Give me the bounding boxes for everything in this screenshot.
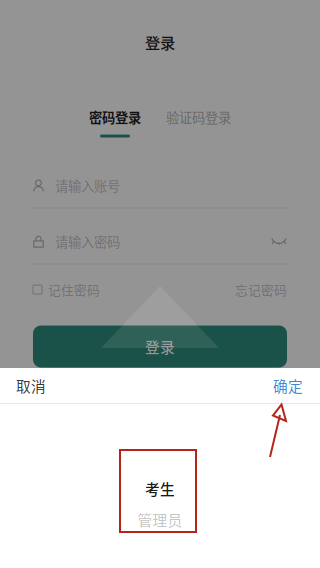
button[interactable]: 记住密码 [33, 280, 100, 299]
staticText: 取消 [16, 375, 46, 396]
staticText: 请输入账号 [55, 176, 120, 195]
button[interactable]: 登录 [33, 325, 287, 367]
button[interactable]: 确定 [261, 368, 320, 403]
staticText: 忘记密码 [235, 280, 287, 299]
staticText: 登录 [145, 336, 175, 357]
staticText: 管理员 [137, 509, 182, 530]
staticText: 登录 [145, 31, 175, 53]
staticText: 请输入密码 [55, 232, 120, 251]
staticText: 记住密码 [48, 280, 100, 299]
button[interactable]: 验证码登录 [166, 107, 231, 137]
staticText: 验证码登录 [166, 107, 231, 126]
button[interactable]: 忘记密码 [235, 280, 287, 299]
staticText: 确定 [273, 375, 303, 396]
button[interactable]: 取消 [0, 368, 58, 403]
staticText: 考生 [145, 478, 175, 499]
staticText: 密码登录 [89, 107, 141, 126]
button[interactable]: 密码登录 [89, 107, 141, 137]
